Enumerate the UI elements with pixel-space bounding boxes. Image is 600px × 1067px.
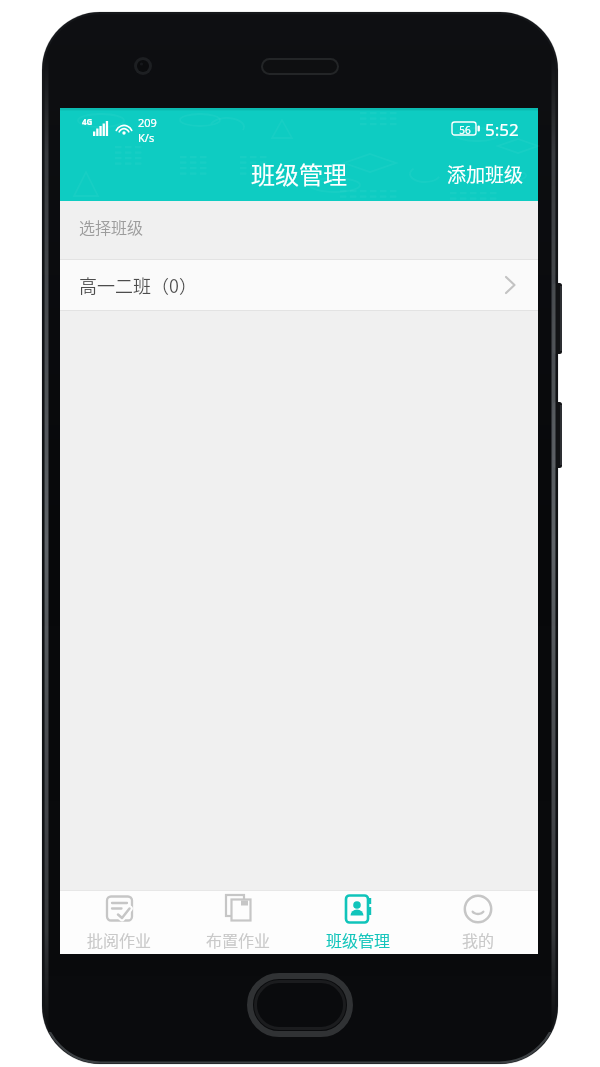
staticText: 209 [138, 115, 157, 130]
button[interactable]: 布置作业 [179, 891, 298, 954]
staticText: 5:52 [485, 118, 519, 141]
button[interactable]: 我的 [418, 891, 538, 954]
button[interactable]: 批阅作业 [60, 891, 179, 954]
staticText: 高一二班（0） [79, 272, 197, 298]
staticText: 添加班级 [447, 160, 524, 188]
button[interactable]: 添加班级 [447, 146, 538, 201]
staticText: 我的 [462, 928, 495, 951]
staticText: 选择班级 [79, 215, 144, 238]
staticText: K/s [138, 130, 155, 145]
staticText: 布置作业 [206, 928, 271, 951]
staticText: 班级管理 [251, 156, 347, 191]
staticText: 班级管理 [326, 928, 391, 951]
staticText: 批阅作业 [87, 928, 152, 951]
button[interactable]: 高一二班（0） [60, 260, 538, 310]
staticText: 4G [82, 116, 93, 127]
staticText: 56 [454, 123, 476, 137]
button[interactable]: 班级管理 [298, 891, 418, 954]
